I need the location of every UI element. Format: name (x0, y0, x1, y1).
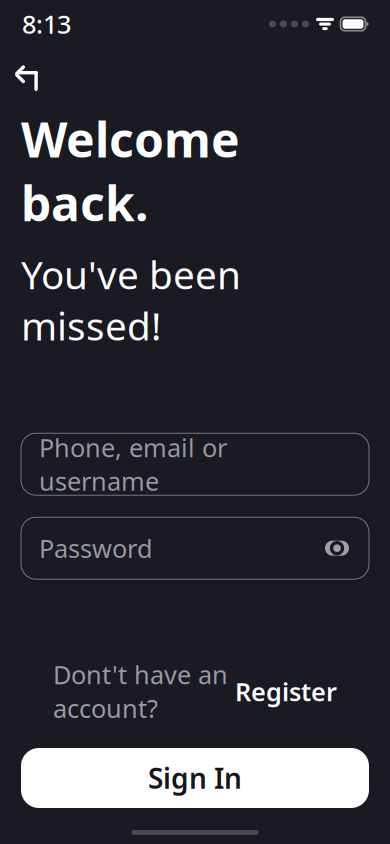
button[interactable]: Show password (319, 530, 355, 566)
button[interactable]: Phone, email or username (21, 433, 369, 495)
staticText: Phone, email or username (39, 430, 227, 498)
button[interactable]: Password (21, 517, 369, 579)
staticText: Register (235, 674, 337, 708)
button[interactable]: Sign In (21, 748, 369, 808)
staticText: You've been missed! (21, 248, 241, 351)
button[interactable]: Back (13, 56, 43, 99)
button[interactable]: Dont't have an account? (43, 652, 347, 731)
staticText: Password (39, 531, 153, 565)
staticText: Sign In (148, 759, 242, 797)
staticText: Dont't have an account? (53, 658, 228, 725)
staticText: 8:13 (22, 7, 71, 41)
staticText: Welcome back. (21, 107, 240, 234)
